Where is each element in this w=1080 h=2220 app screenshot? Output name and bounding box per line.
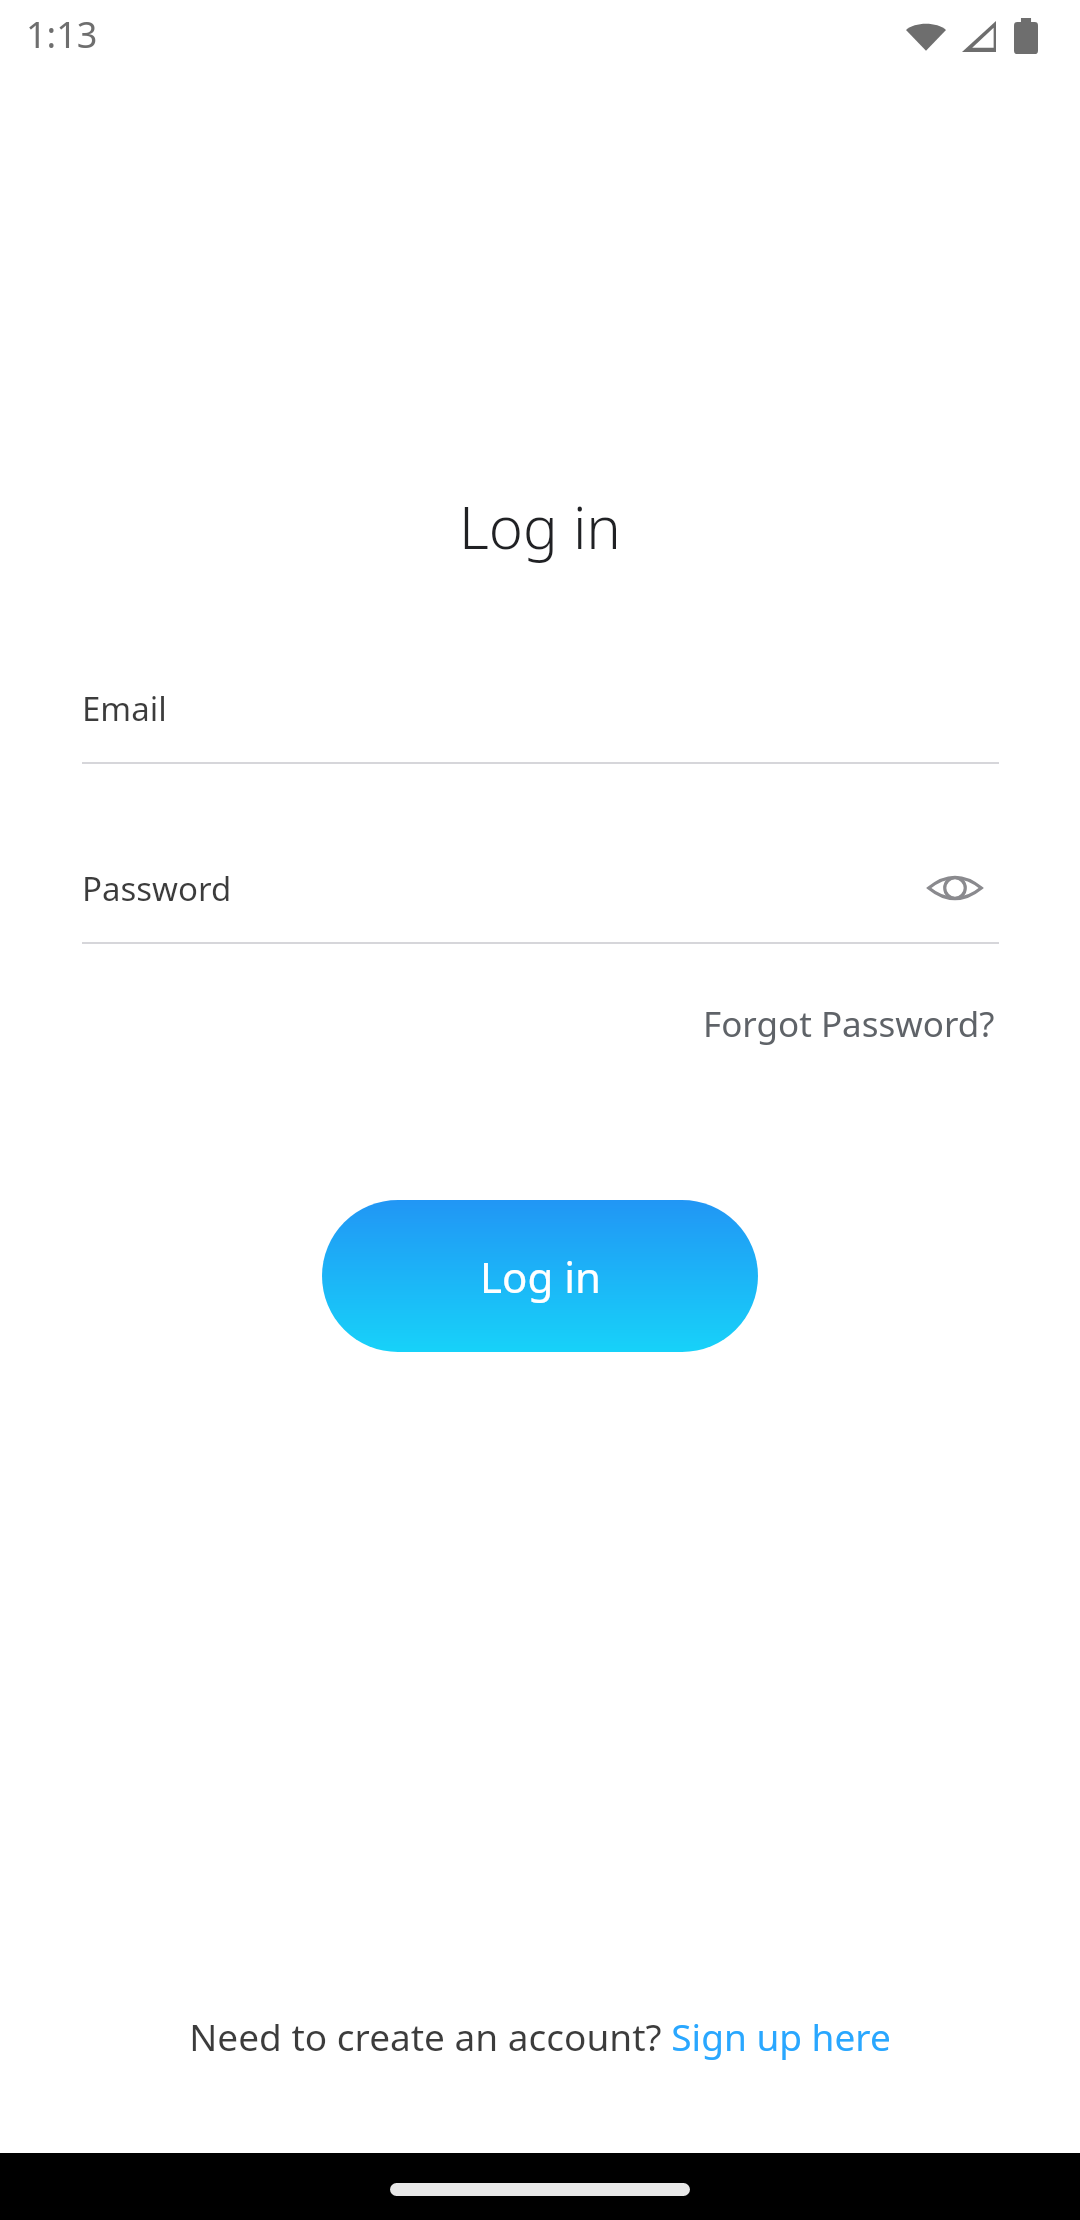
button[interactable]: Log in [322, 1200, 758, 1352]
staticText: Log in [459, 487, 621, 566]
staticText: Log in [480, 1248, 601, 1305]
button[interactable]: Password [82, 832, 999, 944]
staticText: Email [82, 686, 167, 731]
button[interactable]: Email [82, 652, 999, 764]
staticText: Forgot Password? [703, 1000, 995, 1048]
staticText: Password [82, 866, 232, 911]
button[interactable]: Show password [919, 852, 991, 924]
button[interactable]: Need to create an account? Sign up here [181, 2005, 899, 2067]
button[interactable]: Forgot Password? [699, 994, 999, 1054]
staticText: 1:13 [26, 10, 98, 59]
staticText: Need to create an account? Sign up here [189, 2011, 891, 2061]
